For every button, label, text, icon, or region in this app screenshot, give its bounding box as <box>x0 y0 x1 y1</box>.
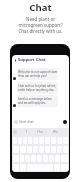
staticText: Start chat <box>19 120 34 124</box>
button[interactable]: Emoji <box>13 130 17 134</box>
button[interactable]: Start chat <box>12 118 69 126</box>
staticText: Send us a message below and we will repl… <box>18 97 52 105</box>
other: Send <box>63 120 67 124</box>
other: Back <box>14 59 17 62</box>
staticText: Need plant or microgreen support? Chat d… <box>18 16 63 34</box>
staticText: We <box>53 130 58 134</box>
staticText: Welcome to our support team! How can we … <box>18 70 57 78</box>
staticText: I <box>26 130 28 134</box>
button[interactable]: Back <box>12 57 69 63</box>
button[interactable]: Chat with us for plant advice, order hel… <box>17 82 58 94</box>
staticText: The <box>37 130 43 134</box>
button[interactable]: Welcome to our support team! How can we … <box>17 68 58 80</box>
staticText: Support Chat <box>18 57 46 63</box>
staticText: Chat with us for plant advice, order hel… <box>18 84 57 92</box>
staticText: Chat <box>29 1 52 14</box>
button[interactable]: Send us a message below and we will repl… <box>17 95 58 107</box>
